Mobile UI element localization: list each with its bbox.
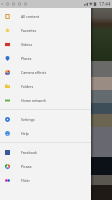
button[interactable]: Home network: [0, 93, 91, 107]
button[interactable]: Folders: [0, 79, 91, 93]
button[interactable]: Places: [0, 51, 91, 65]
staticText: 17:44: [99, 1, 111, 7]
button[interactable]: All content: [0, 9, 91, 23]
button[interactable]: Help: [0, 126, 91, 140]
button[interactable]: Favorites: [0, 23, 91, 37]
staticText: Help: [21, 131, 29, 136]
staticText: Favorites: [21, 28, 37, 33]
staticText: All content: [21, 14, 40, 19]
button[interactable]: Flickr: [0, 173, 91, 187]
staticText: Videos: [21, 42, 33, 47]
staticText: Facebook: [21, 150, 37, 155]
staticText: Folders: [21, 84, 34, 89]
staticText: Flickr: [21, 178, 30, 183]
button[interactable]: Settings: [0, 112, 91, 126]
staticText: Home network: [21, 98, 46, 103]
button[interactable]: Camera effects: [0, 65, 91, 79]
button[interactable]: Videos: [0, 37, 91, 51]
staticText: Picasa: [21, 164, 32, 169]
staticText: Camera effects: [21, 70, 47, 75]
staticText: Settings: [21, 117, 35, 122]
button[interactable]: Picasa: [0, 159, 91, 173]
button[interactable]: Facebook: [0, 145, 91, 159]
staticText: Places: [21, 56, 32, 61]
